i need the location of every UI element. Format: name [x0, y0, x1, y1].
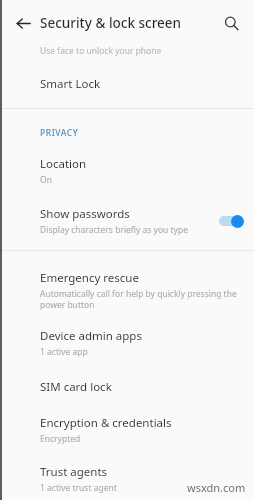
button[interactable]: Location [0, 139, 254, 186]
button[interactable]: Show passwords [0, 186, 254, 236]
staticText: SIM card lock [40, 379, 112, 395]
button[interactable]: Encryption & credentials [0, 395, 254, 445]
staticText: Encrypted [40, 433, 81, 445]
staticText: wsxdn.com [187, 480, 246, 495]
button[interactable]: Use face to unlock your phone [0, 45, 254, 57]
button[interactable]: Show passwords toggle [218, 214, 244, 228]
staticText: Display characters briefly as you type [40, 224, 188, 236]
staticText: Device admin apps [40, 328, 142, 344]
button[interactable]: Search [218, 10, 244, 36]
staticText: Encryption & credentials [40, 415, 172, 431]
staticText: PRIVACY [40, 127, 79, 139]
button[interactable]: Trust agents [0, 445, 254, 494]
staticText: Show passwords [40, 206, 130, 222]
staticText: 1 active app [40, 346, 88, 358]
staticText: Emergency rescue [40, 270, 139, 286]
button[interactable]: Screen pinning [0, 494, 254, 500]
staticText: Location [40, 156, 87, 172]
button[interactable]: Back [10, 10, 36, 36]
staticText: Automatically call for help by quickly p… [40, 288, 244, 310]
staticText: 1 active trust agent [40, 482, 117, 494]
button[interactable]: Device admin apps [0, 310, 254, 358]
button[interactable]: Smart Lock [0, 57, 254, 92]
button[interactable]: Emergency rescue [0, 251, 254, 310]
staticText: Smart Lock [40, 76, 101, 92]
staticText: On [40, 174, 52, 186]
button[interactable]: SIM card lock [0, 358, 254, 395]
staticText: Use face to unlock your phone [40, 45, 162, 57]
staticText: Security & lock screen [40, 14, 182, 32]
staticText: Trust agents [40, 464, 108, 480]
